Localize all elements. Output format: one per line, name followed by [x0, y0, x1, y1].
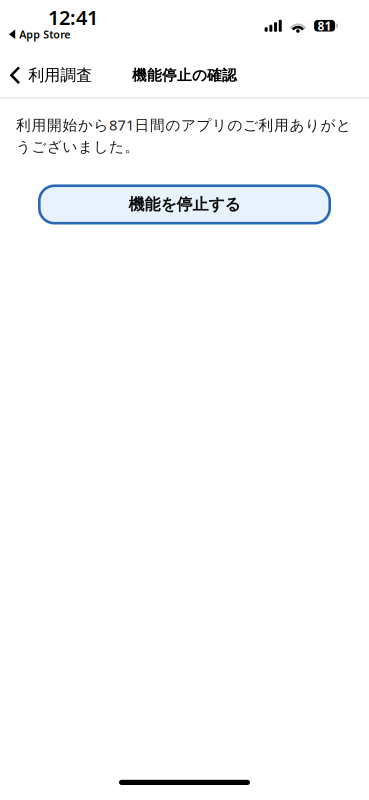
staticText: 12:41	[48, 4, 98, 31]
button[interactable]: 機能を停止する	[38, 184, 331, 224]
button[interactable]: 利用調査	[0, 57, 100, 93]
staticText: 81	[318, 18, 332, 34]
staticText: 機能を停止する	[128, 195, 240, 214]
staticText: App Store	[19, 27, 70, 41]
button[interactable]: Back to App Store	[0, 0, 70, 41]
staticText: 利用開始から871日間のアプリのご利用ありがとうございました。	[16, 115, 351, 156]
staticText: 機能停止の確認	[132, 66, 237, 84]
staticText: 利用調査	[28, 65, 92, 85]
